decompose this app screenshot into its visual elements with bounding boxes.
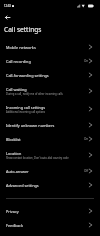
staticText: On bbox=[84, 137, 89, 141]
staticText: Location bbox=[6, 151, 22, 156]
staticText: Incoming call settings bbox=[6, 105, 46, 110]
staticText: Feedback bbox=[6, 223, 23, 228]
staticText: On bbox=[84, 59, 89, 63]
staticText: Advanced settings bbox=[6, 183, 39, 188]
staticText: Show contact location, Don't auto-dial c… bbox=[6, 156, 69, 160]
staticText: Additional incoming call options bbox=[6, 110, 46, 114]
button[interactable]: Call waiting bbox=[0, 82, 100, 100]
button[interactable]: Auto-answer bbox=[0, 164, 100, 178]
staticText: Mobile networks bbox=[6, 45, 36, 50]
staticText: Call-forwarding settings bbox=[6, 73, 49, 78]
button[interactable]: Call-forwarding settings bbox=[0, 68, 100, 82]
staticText: 12:33 bbox=[4, 4, 11, 8]
staticText: Call waiting bbox=[6, 87, 27, 92]
button[interactable]: Feedback bbox=[0, 218, 100, 232]
button[interactable]: Location bbox=[0, 146, 100, 164]
button[interactable]: Advanced settings bbox=[0, 178, 100, 192]
staticText: Call recording bbox=[6, 59, 31, 64]
button[interactable]: Identify unknown numbers bbox=[0, 118, 100, 132]
staticText: During a call, notify me of other incomi… bbox=[6, 92, 63, 96]
staticText: Privacy bbox=[6, 209, 19, 214]
button[interactable]: Call recording bbox=[0, 54, 100, 68]
button[interactable]: Back bbox=[5, 15, 10, 20]
button[interactable]: Privacy bbox=[0, 204, 100, 218]
button[interactable]: Mobile networks bbox=[0, 40, 100, 54]
staticText: Auto-answer bbox=[6, 169, 29, 174]
staticText: Identify unknown numbers bbox=[6, 123, 55, 128]
staticText: Call settings bbox=[4, 25, 42, 34]
button[interactable]: Blocklist bbox=[0, 132, 100, 146]
staticText: Off bbox=[84, 169, 89, 173]
staticText: Blocklist bbox=[6, 137, 21, 142]
button[interactable]: Incoming call settings bbox=[0, 100, 100, 118]
